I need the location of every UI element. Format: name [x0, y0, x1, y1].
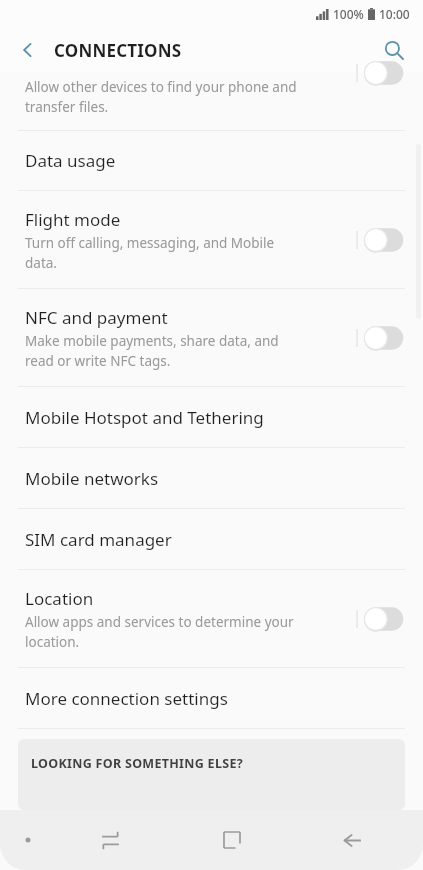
staticText: CONNECTIONS — [54, 39, 182, 62]
staticText: More connection settings — [25, 687, 228, 710]
staticText: 100% — [333, 6, 364, 22]
button[interactable] — [354, 323, 410, 353]
button[interactable]: Back — [11, 33, 45, 67]
staticText: LOOKING FOR SOMETHING ELSE? — [31, 755, 243, 772]
button[interactable]: Search — [376, 32, 412, 68]
staticText: Data usage — [25, 149, 116, 172]
button[interactable]: SIM card manager — [0, 509, 423, 569]
button[interactable]: Flight mode — [0, 191, 423, 288]
staticText: Flight mode — [25, 208, 121, 231]
button[interactable]: Recents — [50, 810, 171, 870]
button[interactable]: Data usage — [0, 131, 423, 190]
button[interactable]: Back — [292, 810, 413, 870]
button[interactable]: Mobile Hotspot and Tethering — [0, 387, 423, 447]
staticText: Make mobile payments, share data, and re… — [25, 332, 279, 370]
button[interactable]: Mobile networks — [0, 448, 423, 508]
button[interactable] — [354, 58, 410, 88]
button[interactable]: Location — [0, 570, 423, 667]
staticText: SIM card manager — [25, 528, 172, 551]
staticText: Turn off calling, messaging, and Mobile … — [25, 234, 275, 272]
button[interactable] — [354, 604, 410, 634]
button[interactable]: Home — [171, 810, 292, 870]
staticText: NFC and payment — [25, 306, 168, 329]
button[interactable]: LOOKING FOR SOMETHING ELSE? — [18, 739, 405, 810]
staticText: Location — [25, 587, 94, 610]
button[interactable]: More connection settings — [0, 668, 423, 728]
staticText: 10:00 — [379, 6, 410, 22]
staticText: Mobile Hotspot and Tethering — [25, 406, 264, 429]
button[interactable] — [354, 225, 410, 255]
button[interactable]: NFC and payment — [0, 289, 423, 386]
staticText: Allow other devices to find your phone a… — [25, 78, 297, 116]
button[interactable]: Allow other devices to find your phone a… — [0, 72, 423, 130]
staticText: Allow apps and services to determine you… — [25, 613, 294, 651]
staticText: Mobile networks — [25, 467, 159, 490]
